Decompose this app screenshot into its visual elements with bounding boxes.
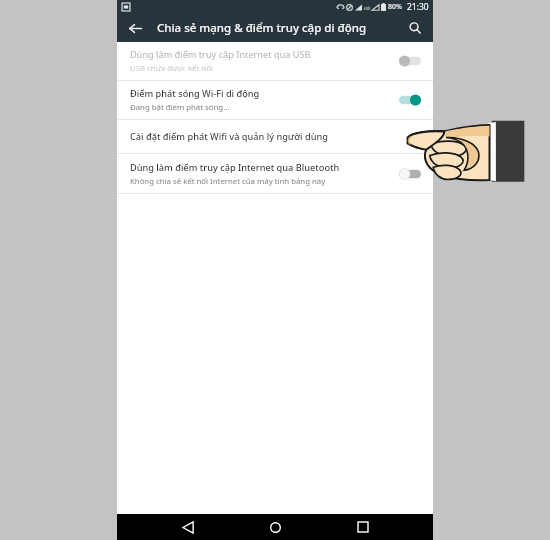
- button[interactable]: Toggle: [395, 162, 425, 186]
- staticText: 80%: [388, 2, 402, 12]
- button[interactable]: Search: [403, 16, 427, 40]
- staticText: Dùng làm điểm truy cập Internet qua Blue…: [130, 161, 340, 174]
- button[interactable]: Home: [258, 514, 292, 540]
- button[interactable]: Back: [171, 514, 205, 540]
- staticText: Dùng làm điểm truy cập Internet qua USB: [130, 48, 311, 61]
- button[interactable]: Điểm phát sóng Wi-Fi di động: [117, 81, 433, 119]
- button[interactable]: Recent apps: [346, 514, 380, 540]
- staticText: Điểm phát sóng Wi-Fi di động: [130, 87, 260, 100]
- button[interactable]: Dùng làm điểm truy cập Internet qua USB: [117, 42, 433, 80]
- staticText: 21:30: [407, 1, 429, 13]
- staticText: Đang bật điểm phát sóng...: [130, 102, 230, 113]
- button[interactable]: Toggle: [395, 49, 425, 73]
- button[interactable]: Dùng làm điểm truy cập Internet qua Blue…: [117, 154, 433, 193]
- staticText: USB chưa được kết nối: [130, 63, 213, 74]
- staticText: Chia sẻ mạng & điểm truy cập di động: [157, 20, 367, 36]
- button[interactable]: Toggle: [395, 88, 425, 112]
- staticText: Không chia sẻ kết nối Internet của máy t…: [130, 176, 326, 187]
- button[interactable]: Navigate up: [123, 16, 147, 40]
- button[interactable]: Cài đặt điểm phát Wifi và quản lý người …: [117, 120, 433, 153]
- staticText: Cài đặt điểm phát Wifi và quản lý người …: [130, 130, 328, 143]
